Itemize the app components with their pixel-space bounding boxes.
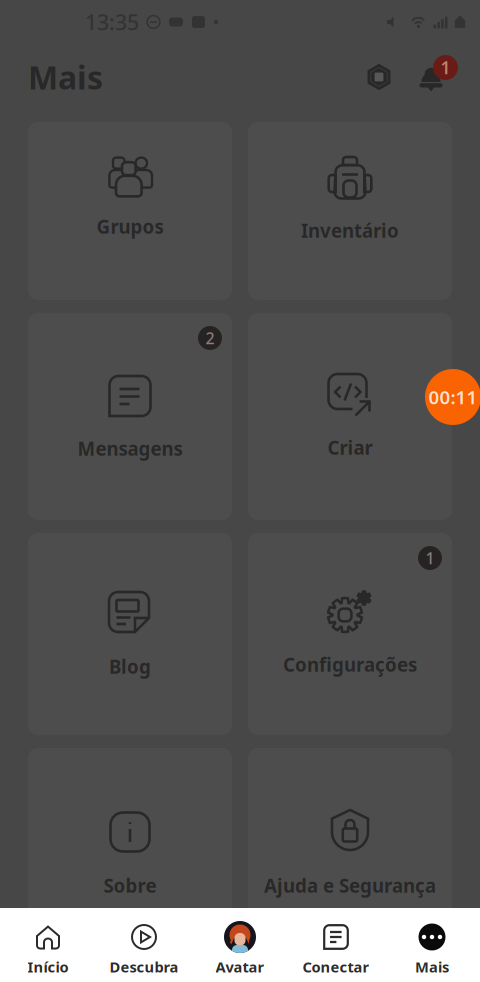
staticText: Inventário <box>301 218 399 243</box>
staticText: Configurações <box>283 652 417 677</box>
button[interactable]: Grupos <box>28 122 232 300</box>
button[interactable]: Criar <box>248 313 452 520</box>
staticText: Mensagens <box>77 436 182 461</box>
button[interactable]: Sobre <box>28 748 232 950</box>
staticText: Conectar <box>302 957 369 976</box>
staticText: Sobre <box>103 873 156 898</box>
button[interactable]: Configurações <box>248 533 452 735</box>
staticText: Blog <box>109 654 151 679</box>
staticText: 13:35 <box>85 8 139 36</box>
button[interactable]: Ajuda e Segurança <box>248 748 452 950</box>
staticText: Mais <box>415 957 449 976</box>
button[interactable]: Início <box>0 908 96 982</box>
staticText: Criar <box>327 435 372 460</box>
button[interactable]: Avatar <box>192 908 288 982</box>
staticText: 00:11 <box>428 385 477 409</box>
staticText: Descubra <box>109 957 178 976</box>
staticText: Avatar <box>215 957 264 976</box>
staticText: Grupos <box>96 214 163 239</box>
button[interactable]: Notificações <box>408 54 454 100</box>
button[interactable]: 00:11 <box>425 369 480 425</box>
staticText: Início <box>27 957 68 976</box>
staticText: Mais <box>28 56 103 98</box>
button[interactable]: Robux <box>356 54 402 100</box>
button[interactable]: Inventário <box>248 122 452 300</box>
button[interactable]: Mensagens <box>28 313 232 520</box>
staticText: 1 <box>440 56 450 79</box>
button[interactable]: Descubra <box>96 908 192 982</box>
staticText: Ajuda e Segurança <box>264 873 436 898</box>
staticText: 2 <box>205 327 214 349</box>
staticText: 1 <box>425 547 434 569</box>
button[interactable]: Conectar <box>288 908 384 982</box>
button[interactable]: Mais <box>384 908 480 982</box>
button[interactable]: Blog <box>28 533 232 735</box>
